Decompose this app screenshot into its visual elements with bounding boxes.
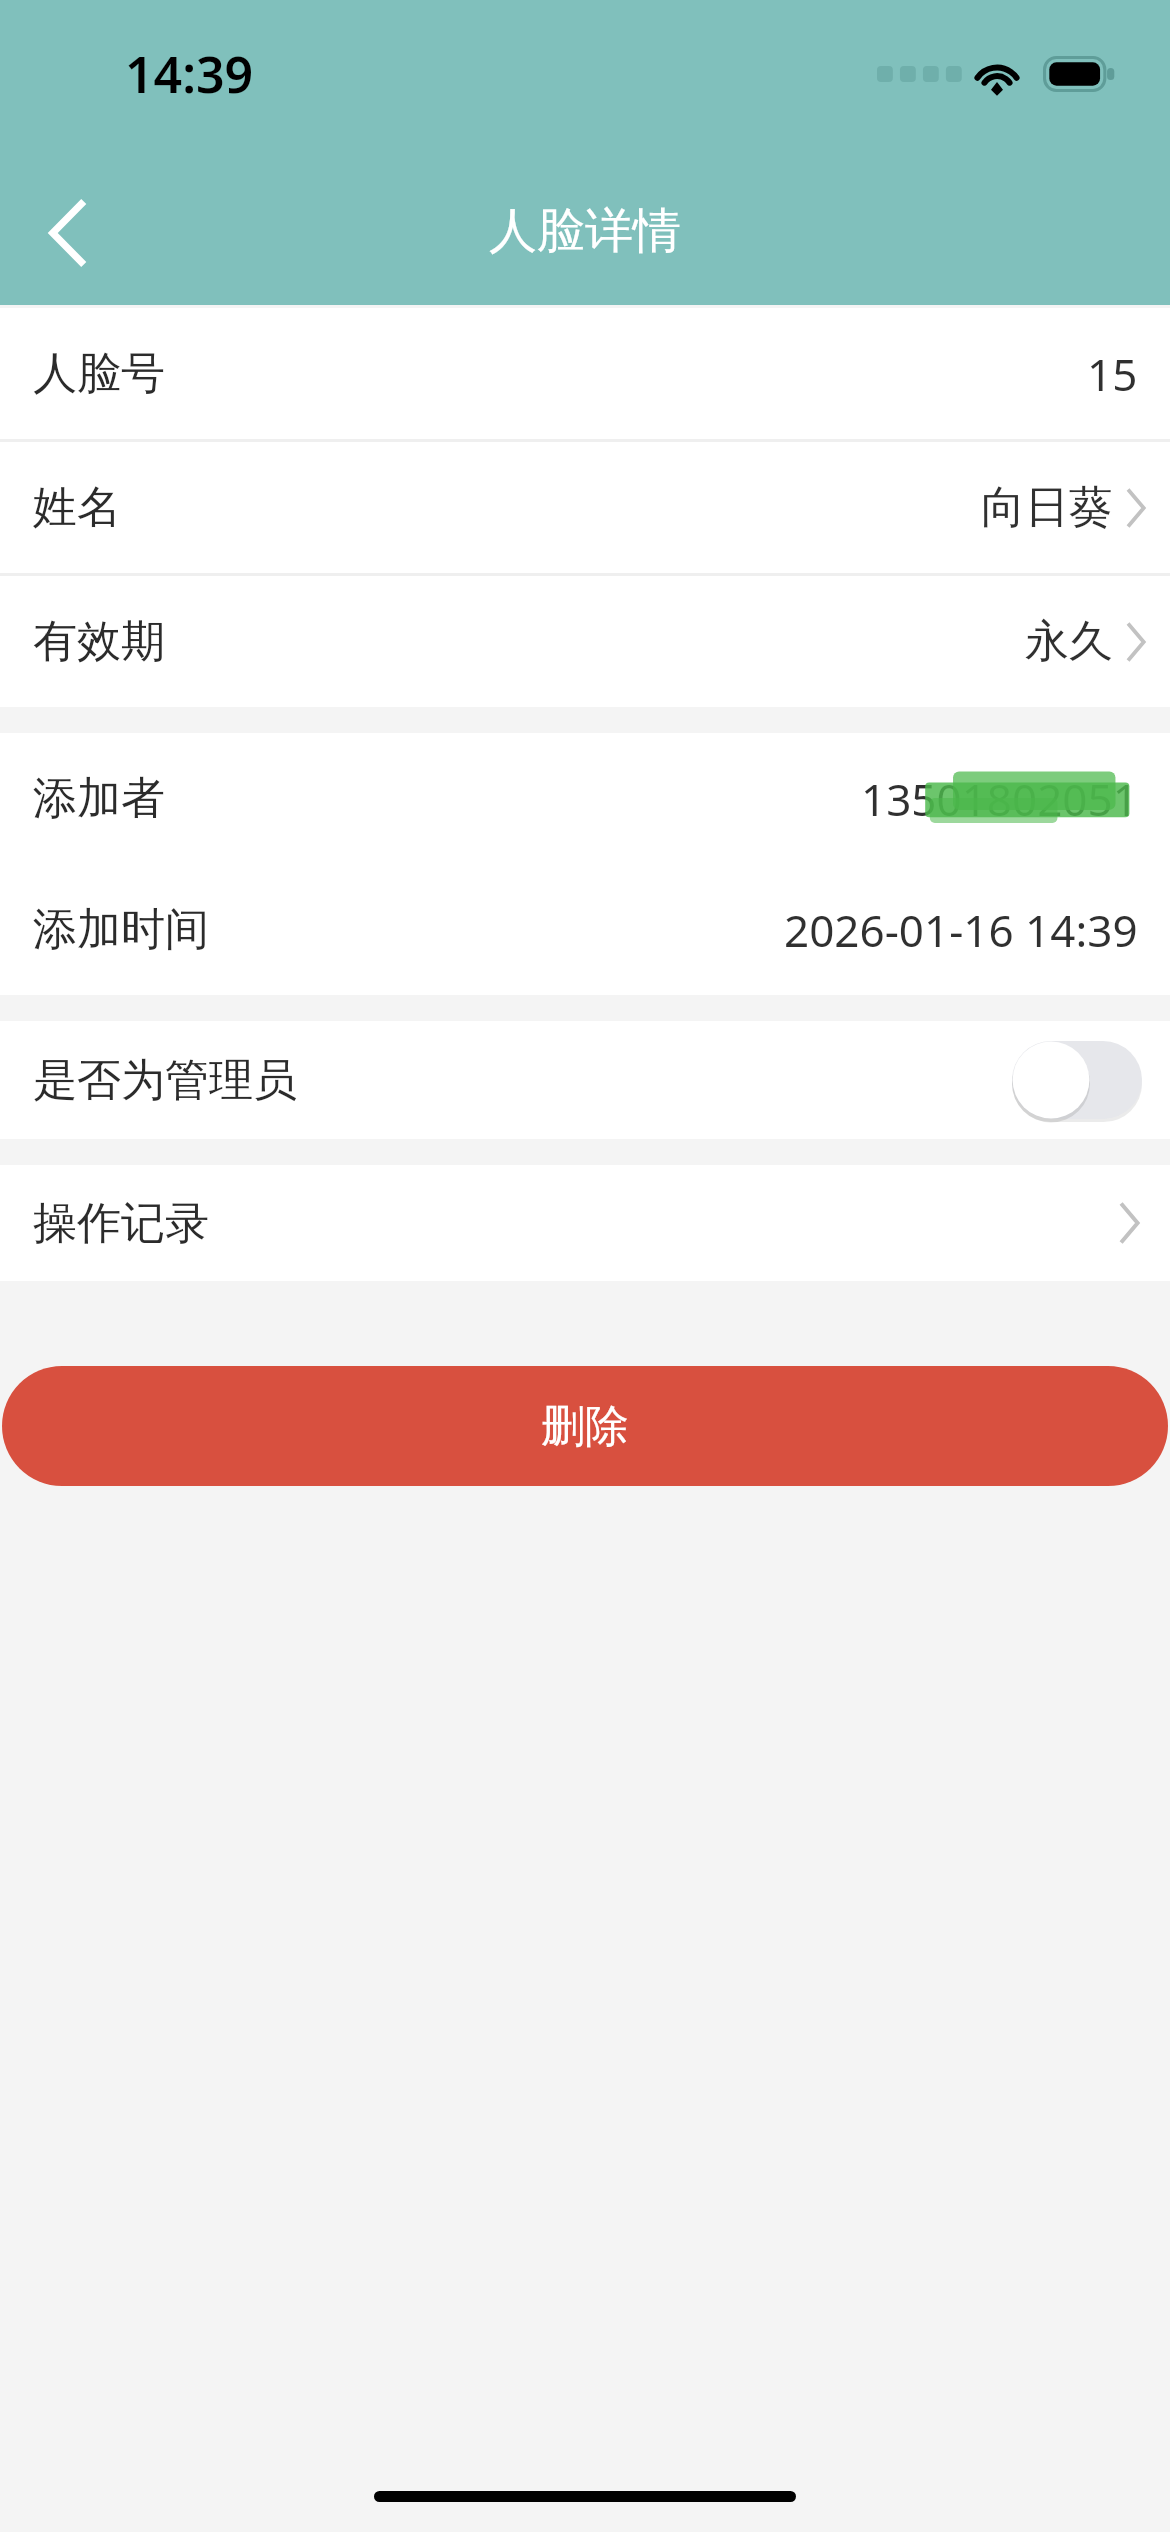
staticText: 添加时间 — [33, 902, 209, 957]
staticText: 是否为管理员 — [33, 1053, 297, 1108]
button[interactable]: 添加者 — [0, 733, 1170, 864]
staticText: 向日葵 — [981, 480, 1113, 535]
staticText: 13501802051 — [861, 769, 1138, 829]
staticText: 添加者 — [33, 771, 165, 826]
staticText: 14:39 — [125, 40, 254, 108]
button[interactable]: 操作记录 — [0, 1165, 1170, 1281]
staticText: 有效期 — [33, 614, 165, 669]
button[interactable]: 是否为管理员 — [0, 1021, 1170, 1139]
staticText: 人脸号 — [33, 346, 165, 401]
button[interactable]: 有效期 — [0, 576, 1170, 707]
staticText: 操作记录 — [33, 1196, 209, 1251]
button[interactable]: Toggle admin — [1012, 1041, 1142, 1119]
staticText: 永久 — [1025, 614, 1113, 669]
button[interactable]: Back — [22, 188, 112, 278]
button[interactable]: 姓名 — [0, 442, 1170, 573]
staticText: 删除 — [541, 1399, 629, 1454]
staticText: 15 — [1087, 344, 1138, 404]
button[interactable]: 人脸号 — [0, 308, 1170, 439]
button[interactable]: 删除 — [2, 1366, 1168, 1486]
button[interactable]: 添加时间 — [0, 864, 1170, 995]
staticText: 人脸详情 — [489, 201, 681, 261]
staticText: 姓名 — [33, 480, 121, 535]
staticText: 2026-01-16 14:39 — [784, 900, 1138, 960]
